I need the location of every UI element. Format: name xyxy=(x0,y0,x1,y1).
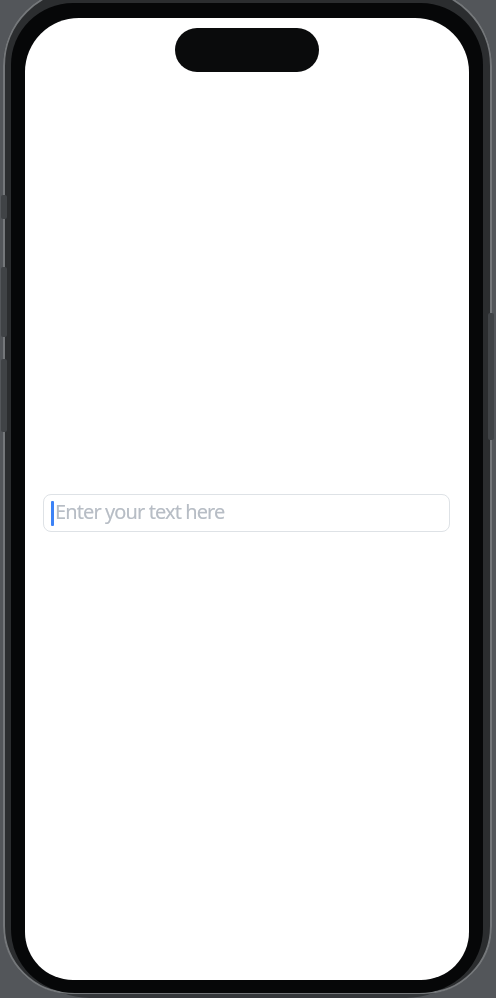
button[interactable]: Enter your text here xyxy=(43,494,450,532)
staticText: Enter your text here xyxy=(55,498,225,525)
